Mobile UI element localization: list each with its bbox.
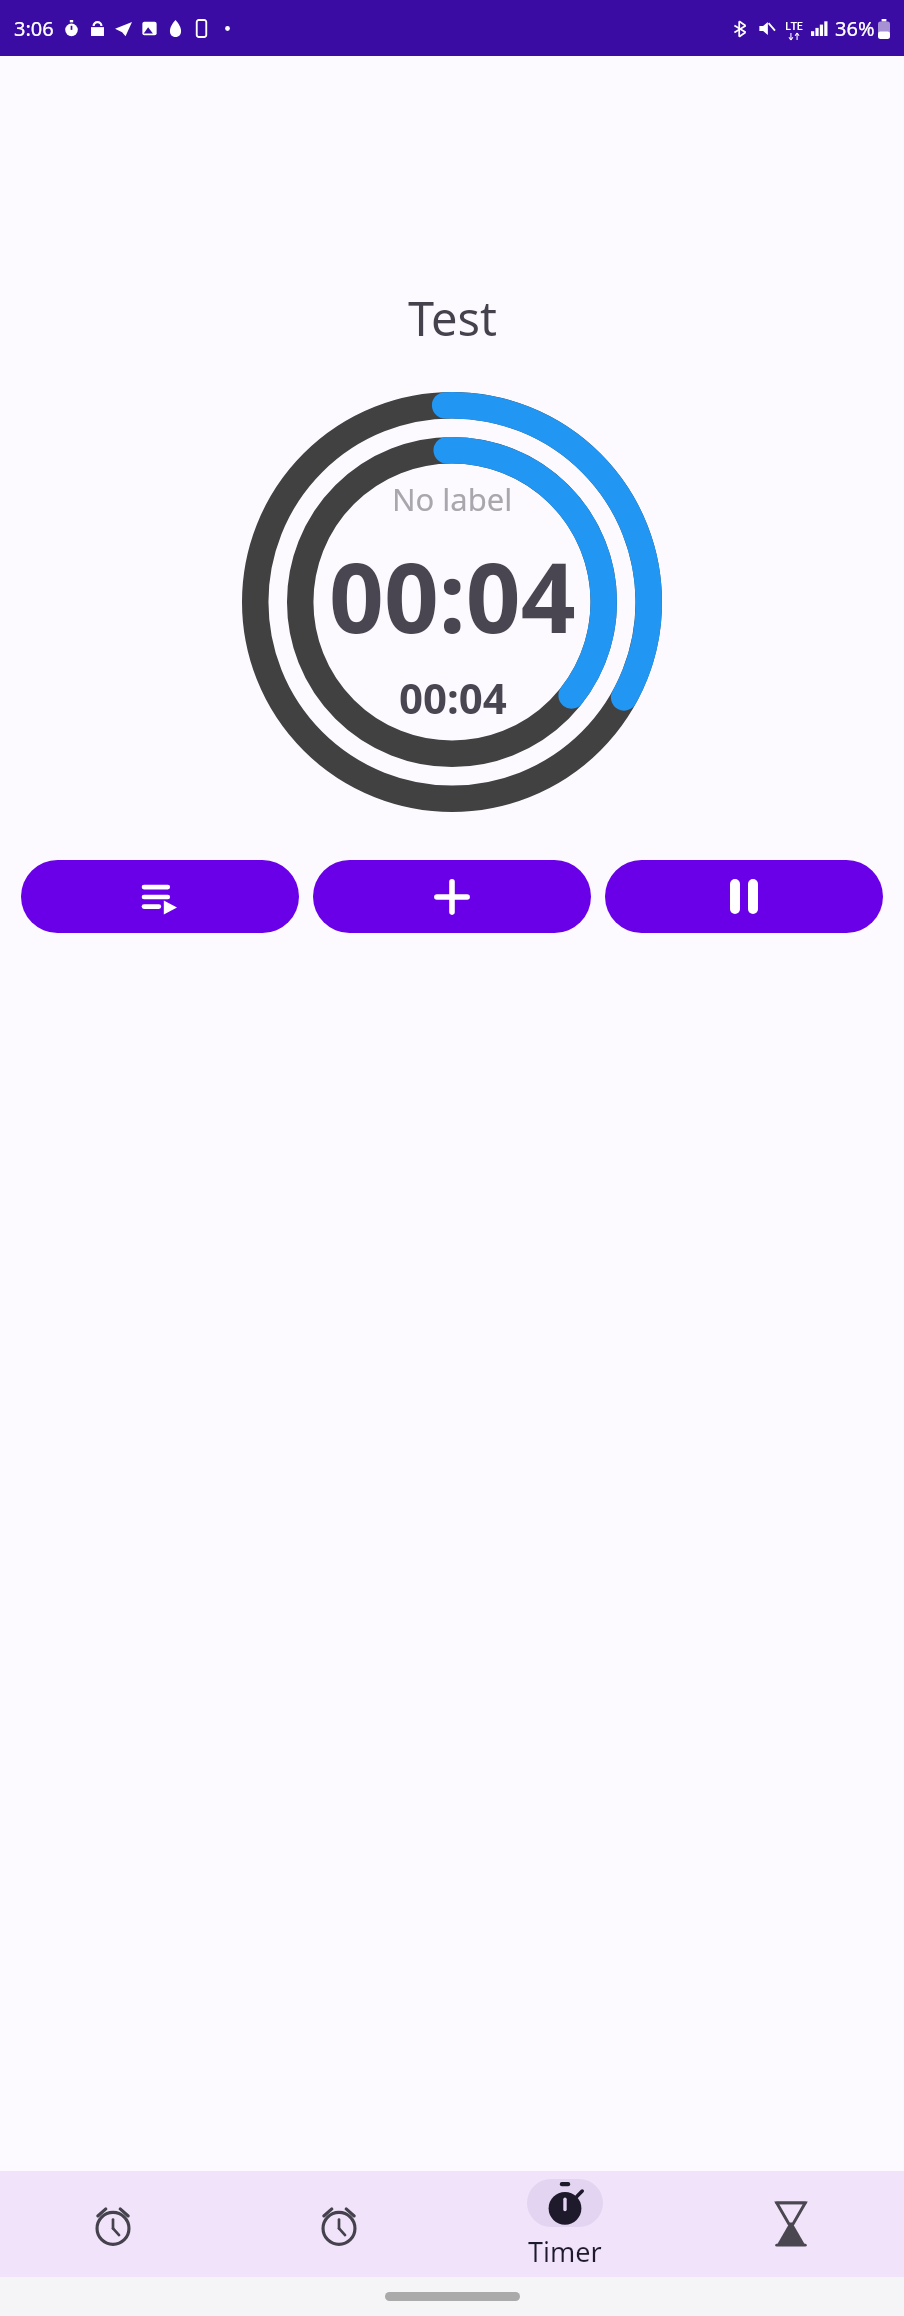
staticText: 36% bbox=[835, 15, 875, 42]
staticText: Timer bbox=[528, 2233, 602, 2270]
staticText: LTE bbox=[785, 18, 803, 33]
button[interactable]: Timer bbox=[452, 2179, 678, 2270]
button[interactable]: Pause bbox=[605, 860, 883, 933]
button[interactable]: Add one minute bbox=[313, 860, 591, 933]
button[interactable]: Stopwatch bbox=[678, 2200, 904, 2248]
staticText: 00:04 bbox=[329, 530, 576, 661]
button[interactable]: Timer queue bbox=[21, 860, 299, 933]
staticText: Test bbox=[408, 286, 497, 350]
button[interactable]: Clock bbox=[226, 2200, 452, 2248]
staticText: 00:04 bbox=[399, 669, 507, 726]
staticText: 3:06 bbox=[14, 15, 54, 42]
staticText: No label bbox=[392, 478, 513, 520]
button[interactable]: Alarm bbox=[0, 2200, 226, 2248]
